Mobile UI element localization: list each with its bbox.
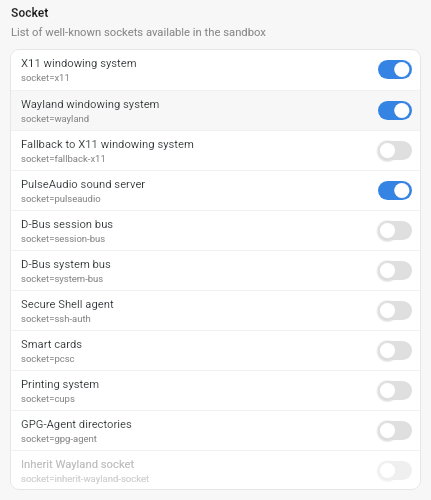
staticText: socket=fallback-x11	[21, 153, 106, 164]
button[interactable]: Secure Shell agent	[10, 291, 421, 330]
staticText: Socket	[11, 6, 49, 20]
button[interactable]: Printing system	[10, 371, 421, 410]
button[interactable]: Wayland windowing system	[10, 91, 421, 130]
button[interactable]: GPG-Agent directories	[10, 411, 421, 450]
button[interactable]: Toggle PulseAudio sound server	[376, 179, 414, 202]
staticText: Fallback to X11 windowing system	[21, 138, 194, 151]
staticText: socket=system-bus	[21, 273, 104, 284]
button[interactable]: Toggle Printing system	[376, 379, 414, 402]
staticText: socket=session-bus	[21, 233, 106, 244]
staticText: Smart cards	[21, 338, 83, 351]
staticText: Wayland windowing system	[21, 98, 160, 111]
button[interactable]: Toggle Wayland windowing system	[376, 99, 414, 122]
button[interactable]: Toggle GPG-Agent directories	[376, 419, 414, 442]
button[interactable]: D-Bus system bus	[10, 251, 421, 290]
button[interactable]: Toggle D-Bus system bus	[376, 259, 414, 282]
staticText: socket=cups	[21, 393, 75, 404]
button[interactable]: X11 windowing system	[10, 49, 421, 90]
button[interactable]: Toggle D-Bus session bus	[376, 219, 414, 242]
button[interactable]: D-Bus session bus	[10, 211, 421, 250]
staticText: socket=inherit-wayland-socket	[21, 473, 150, 484]
staticText: List of well-known sockets available in …	[11, 26, 266, 39]
staticText: socket=gpg-agent	[21, 433, 97, 444]
staticText: Printing system	[21, 378, 100, 391]
staticText: X11 windowing system	[21, 57, 137, 70]
button[interactable]: Toggle Smart cards	[376, 339, 414, 362]
button[interactable]: Smart cards	[10, 331, 421, 370]
staticText: D-Bus session bus	[21, 218, 114, 231]
button[interactable]: Toggle Inherit Wayland socket	[376, 459, 414, 482]
button[interactable]: Toggle Fallback to X11 windowing system	[376, 139, 414, 162]
button[interactable]: Fallback to X11 windowing system	[10, 131, 421, 170]
staticText: socket=wayland	[21, 113, 90, 124]
staticText: socket=ssh-auth	[21, 313, 91, 324]
staticText: GPG-Agent directories	[21, 418, 132, 431]
staticText: PulseAudio sound server	[21, 178, 146, 191]
button[interactable]: Toggle X11 windowing system	[376, 58, 414, 81]
staticText: Inherit Wayland socket	[21, 458, 135, 471]
staticText: D-Bus system bus	[21, 258, 111, 271]
button[interactable]: Inherit Wayland socket	[10, 451, 421, 490]
staticText: socket=pcsc	[21, 353, 75, 364]
button[interactable]: Toggle Secure Shell agent	[376, 299, 414, 322]
staticText: Secure Shell agent	[21, 298, 114, 311]
staticText: socket=x11	[21, 72, 70, 83]
button[interactable]: PulseAudio sound server	[10, 171, 421, 210]
staticText: socket=pulseaudio	[21, 193, 101, 204]
